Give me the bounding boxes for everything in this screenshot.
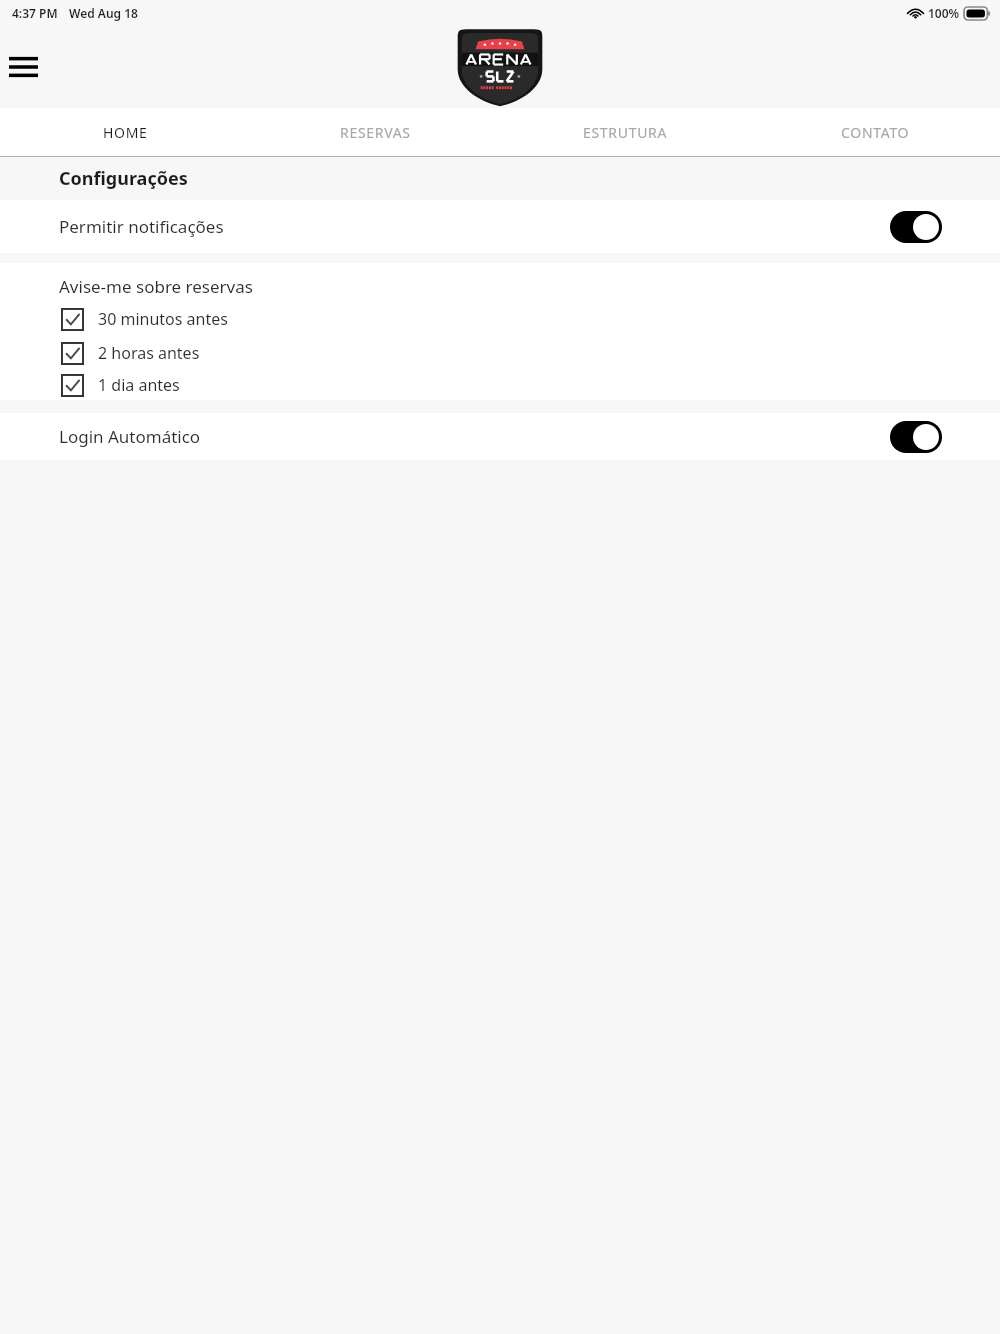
- button[interactable]: Menu: [1, 45, 45, 89]
- button[interactable]: Permitir notificações: [0, 200, 1000, 253]
- staticText: 30 minutos antes: [98, 308, 228, 330]
- staticText: 100%: [928, 5, 960, 21]
- button[interactable]: Permitir notificações: [890, 211, 942, 243]
- button[interactable]: 1 dia antes: [0, 370, 1000, 400]
- button[interactable]: HOME: [0, 108, 250, 156]
- button[interactable]: CONTATO: [750, 108, 1000, 156]
- staticText: Permitir notificações: [59, 215, 224, 238]
- staticText: CONTATO: [841, 123, 910, 142]
- button[interactable]: ESTRUTURA: [500, 108, 750, 156]
- staticText: 1 dia antes: [98, 374, 180, 396]
- staticText: ESTRUTURA: [583, 123, 668, 142]
- staticText: Login Automático: [59, 425, 201, 448]
- staticText: HOME: [103, 123, 148, 142]
- button[interactable]: Arena SLZ Beach Sports logo: [452, 26, 548, 108]
- button[interactable]: 2 horas antes: [0, 336, 1000, 370]
- staticText: Configurações: [59, 166, 188, 191]
- button[interactable]: Login Automático: [0, 413, 1000, 460]
- staticText: 2 horas antes: [98, 342, 200, 364]
- staticText: 4:37 PM: [12, 5, 58, 21]
- staticText: Avise-me sobre reservas: [59, 275, 253, 298]
- staticText: Wed Aug 18: [69, 5, 138, 21]
- button[interactable]: 30 minutos antes: [0, 302, 1000, 336]
- button[interactable]: Login Automático: [890, 421, 942, 453]
- staticText: RESERVAS: [340, 123, 411, 142]
- button[interactable]: RESERVAS: [250, 108, 500, 156]
